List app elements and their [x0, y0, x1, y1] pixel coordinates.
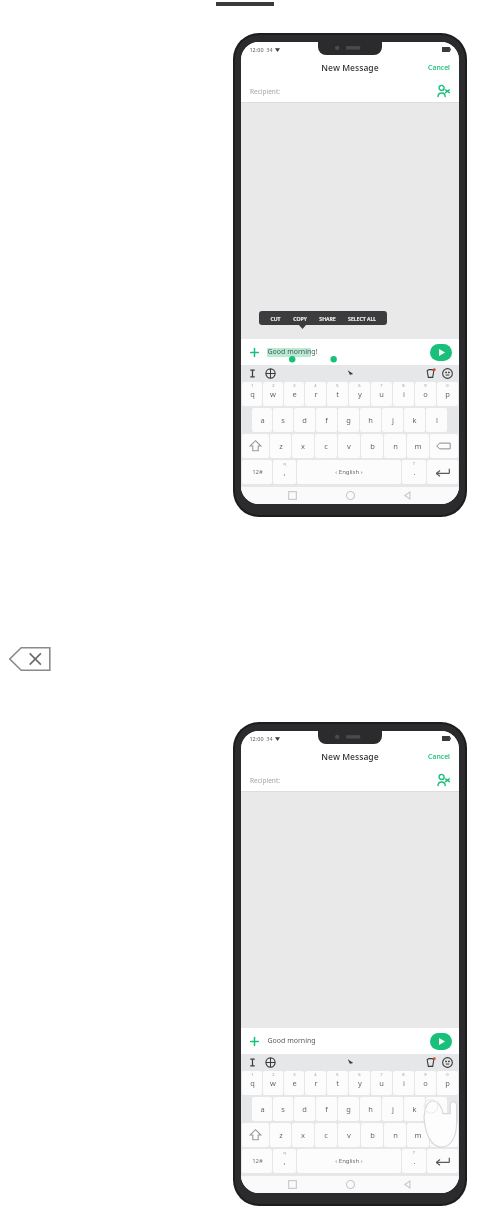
button[interactable]: m	[407, 434, 429, 458]
button[interactable]: f	[316, 408, 337, 432]
button[interactable]: SHARE	[313, 313, 342, 324]
button[interactable]: Text cursor	[247, 368, 258, 379]
button[interactable]: e	[284, 382, 304, 406]
button[interactable]: g	[338, 1097, 359, 1121]
button[interactable]: k	[404, 1097, 425, 1121]
button[interactable]: ‹ English ›	[297, 1149, 401, 1173]
button[interactable]: j	[382, 408, 403, 432]
button[interactable]: p	[437, 1071, 458, 1095]
button[interactable]: Recipient:	[241, 79, 459, 103]
button[interactable]: a	[252, 1097, 272, 1121]
button[interactable]: w	[263, 382, 283, 406]
button[interactable]: d	[294, 1097, 315, 1121]
button[interactable]: Stickers	[425, 1057, 436, 1068]
button[interactable]: Handwriting	[345, 368, 356, 379]
button[interactable]: n	[384, 1123, 406, 1147]
button[interactable]: Language	[265, 1057, 276, 1068]
button[interactable]: o	[415, 1071, 436, 1095]
button[interactable]: y	[349, 382, 370, 406]
button[interactable]: b	[361, 1123, 383, 1147]
button[interactable]: k	[404, 408, 425, 432]
button[interactable]: Add contact	[436, 773, 450, 787]
button[interactable]: h	[360, 1097, 381, 1121]
button[interactable]: m	[407, 1123, 429, 1147]
button[interactable]: i	[393, 1071, 414, 1095]
button[interactable]: x	[292, 434, 314, 458]
button[interactable]: ,	[273, 460, 296, 484]
button[interactable]: Shift	[242, 434, 269, 458]
button[interactable]: Handwriting	[345, 1057, 356, 1068]
button[interactable]: Back	[402, 1179, 413, 1190]
button[interactable]: Emoji	[442, 1057, 453, 1068]
button[interactable]: t	[327, 382, 348, 406]
staticText: 6	[358, 1072, 361, 1077]
button[interactable]: g	[338, 408, 359, 432]
button[interactable]: i	[393, 382, 414, 406]
button[interactable]: Recents	[287, 1179, 298, 1190]
button[interactable]: Language	[265, 368, 276, 379]
button[interactable]: Backspace	[430, 1123, 458, 1147]
button[interactable]: e	[284, 1071, 304, 1095]
button[interactable]: l	[426, 408, 447, 432]
button[interactable]: v	[338, 1123, 360, 1147]
button[interactable]: Backspace	[430, 434, 458, 458]
button[interactable]: t	[327, 1071, 348, 1095]
button[interactable]: Text cursor	[247, 1057, 258, 1068]
button[interactable]: u	[371, 1071, 392, 1095]
button[interactable]: ‹ English ›	[297, 460, 401, 484]
button[interactable]: Cancel	[426, 750, 452, 764]
staticText: 2	[272, 1072, 275, 1077]
button[interactable]: Enter	[427, 460, 458, 484]
button[interactable]: Cancel	[426, 61, 452, 75]
button[interactable]: y	[349, 1071, 370, 1095]
button[interactable]: z	[270, 434, 291, 458]
button[interactable]: Stickers	[425, 368, 436, 379]
button[interactable]: ,	[273, 1149, 296, 1173]
button[interactable]: d	[294, 408, 315, 432]
button[interactable]: Add contact	[436, 84, 450, 98]
button[interactable]: Good morning!	[267, 347, 425, 357]
button[interactable]: p	[437, 382, 458, 406]
button[interactable]: q	[242, 382, 262, 406]
button[interactable]: Send	[430, 344, 452, 361]
button[interactable]: Add attachment	[248, 346, 261, 359]
button[interactable]: a	[252, 408, 272, 432]
button[interactable]: r	[305, 1071, 326, 1095]
button[interactable]: j	[382, 1097, 403, 1121]
button[interactable]: CUT	[264, 313, 287, 324]
button[interactable]: s	[273, 408, 293, 432]
button[interactable]: s	[273, 1097, 293, 1121]
button[interactable]: b	[361, 434, 383, 458]
button[interactable]: Enter	[427, 1149, 458, 1173]
button[interactable]: f	[316, 1097, 337, 1121]
button[interactable]: .	[402, 460, 426, 484]
button[interactable]: r	[305, 382, 326, 406]
button[interactable]: x	[292, 1123, 314, 1147]
button[interactable]: w	[263, 1071, 283, 1095]
button[interactable]: Shift	[242, 1123, 269, 1147]
button[interactable]: c	[315, 434, 337, 458]
button[interactable]: Home	[345, 1179, 356, 1190]
button[interactable]: l	[426, 1097, 447, 1121]
button[interactable]: z	[270, 1123, 291, 1147]
button[interactable]: q	[242, 1071, 262, 1095]
button[interactable]: Add attachment	[248, 1035, 261, 1048]
button[interactable]: 12#	[242, 1149, 272, 1173]
button[interactable]: Emoji	[442, 368, 453, 379]
button[interactable]: Send	[430, 1033, 452, 1050]
button[interactable]: Home	[345, 490, 356, 501]
button[interactable]: o	[415, 382, 436, 406]
button[interactable]: Recents	[287, 490, 298, 501]
button[interactable]: 12#	[242, 460, 272, 484]
button[interactable]: Back	[402, 490, 413, 501]
button[interactable]: c	[315, 1123, 337, 1147]
button[interactable]: COPY	[287, 313, 313, 324]
button[interactable]: n	[384, 434, 406, 458]
button[interactable]: v	[338, 434, 360, 458]
button[interactable]: Good morning	[267, 1036, 425, 1046]
button[interactable]: Recipient:	[241, 768, 459, 792]
button[interactable]: SELECT ALL	[342, 313, 382, 324]
button[interactable]: .	[402, 1149, 426, 1173]
button[interactable]: h	[360, 408, 381, 432]
button[interactable]: u	[371, 382, 392, 406]
